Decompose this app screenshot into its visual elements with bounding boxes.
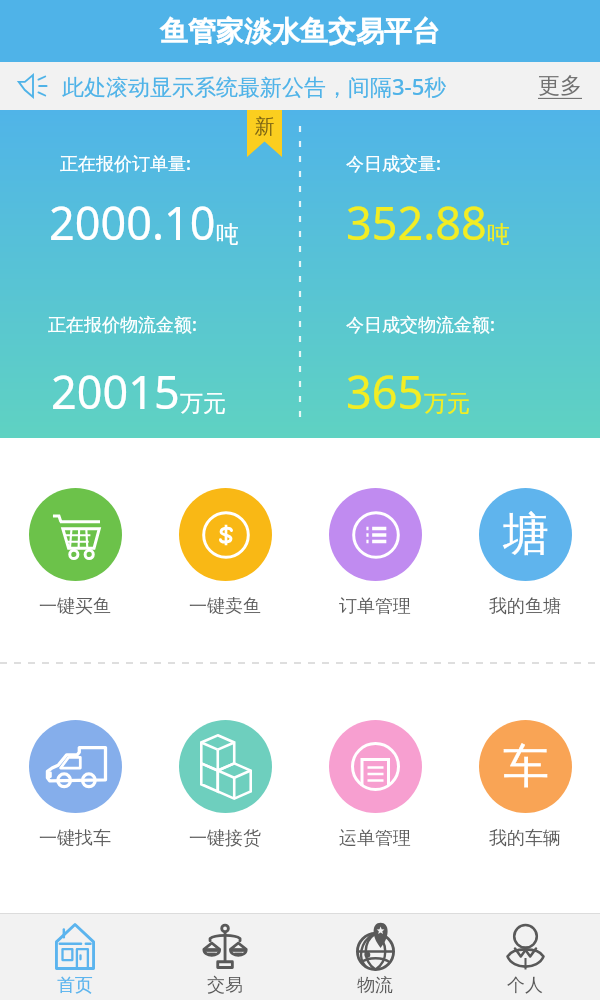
- staticText: 我的车辆: [489, 827, 561, 850]
- staticText: 塘: [503, 506, 549, 564]
- staticText: 20015: [51, 361, 180, 422]
- button[interactable]: 订单管理: [300, 488, 450, 618]
- button[interactable]: 一键找车: [0, 720, 150, 850]
- staticText: 首页: [57, 974, 93, 997]
- staticText: 今日成交物流金额:: [346, 312, 495, 337]
- staticText: 正在报价物流金额:: [48, 312, 197, 337]
- button[interactable]: 运单管理: [300, 720, 450, 850]
- staticText: 物流: [357, 974, 393, 997]
- button[interactable]: 首页: [0, 914, 150, 1000]
- staticText: 运单管理: [339, 827, 411, 850]
- button[interactable]: Announcement: [0, 62, 600, 110]
- staticText: 车: [503, 738, 549, 796]
- button[interactable]: 一键卖鱼: [150, 488, 300, 618]
- staticText: 新: [247, 114, 282, 139]
- staticText: 352.88: [346, 192, 487, 253]
- staticText: 交易: [207, 974, 243, 997]
- button[interactable]: 个人: [450, 914, 600, 1000]
- staticText: 今日成交量:: [346, 151, 441, 176]
- staticText: 365: [346, 361, 424, 422]
- other: Announcement: [16, 69, 50, 103]
- staticText: 万元: [424, 389, 470, 418]
- staticText: 一键找车: [39, 827, 111, 850]
- staticText: 万元: [180, 389, 226, 418]
- staticText: 此处滚动显示系统最新公告，间隔3-5秒: [62, 71, 447, 101]
- staticText: 吨: [216, 220, 239, 249]
- staticText: 一键接货: [189, 827, 261, 850]
- staticText: 吨: [487, 220, 510, 249]
- staticText: 2000.10: [49, 192, 216, 253]
- button[interactable]: 一键买鱼: [0, 488, 150, 618]
- button[interactable]: 一键接货: [150, 720, 300, 850]
- staticText: 正在报价订单量:: [60, 151, 191, 176]
- button[interactable]: 车: [450, 720, 600, 850]
- staticText: 订单管理: [339, 595, 411, 618]
- button[interactable]: 物流: [300, 914, 450, 1000]
- staticText: 一键卖鱼: [189, 595, 261, 618]
- staticText: 鱼管家淡水鱼交易平台: [160, 14, 440, 49]
- staticText: 更多: [538, 72, 582, 100]
- button[interactable]: 塘: [450, 488, 600, 618]
- staticText: 一键买鱼: [39, 595, 111, 618]
- staticText: 我的鱼塘: [489, 595, 561, 618]
- staticText: 个人: [507, 974, 543, 997]
- button[interactable]: 交易: [150, 914, 300, 1000]
